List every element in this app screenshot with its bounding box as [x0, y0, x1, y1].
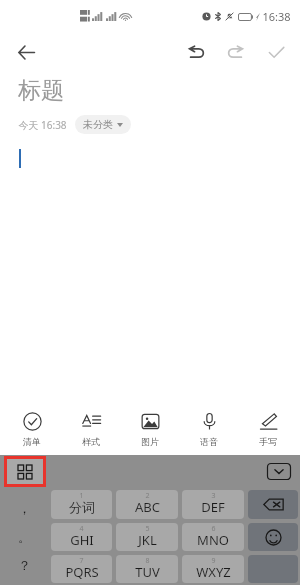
- button[interactable]: 手写: [241, 403, 295, 455]
- staticText: JKL: [138, 531, 157, 549]
- staticText: 3: [211, 491, 216, 501]
- staticText: 。: [18, 529, 31, 545]
- staticText: 7: [79, 556, 84, 566]
- staticText: ABC: [135, 498, 160, 516]
- staticText: 手写: [259, 436, 277, 447]
- button[interactable]: 未分类: [75, 115, 131, 134]
- staticText: 清单: [23, 436, 41, 447]
- staticText: 样式: [82, 436, 100, 447]
- staticText: WXYZ: [196, 563, 231, 581]
- staticText: 图片: [141, 436, 159, 447]
- button[interactable]: 6: [182, 523, 244, 551]
- staticText: 1: [79, 491, 84, 501]
- staticText: 9: [211, 556, 216, 566]
- staticText: 语音: [200, 436, 218, 447]
- staticText: MNO: [197, 531, 229, 549]
- button[interactable]: 语音: [182, 403, 236, 455]
- staticText: 5: [145, 524, 150, 534]
- button[interactable]: 8: [116, 555, 178, 583]
- staticText: PQRS: [65, 563, 99, 581]
- button[interactable]: 1: [51, 490, 112, 519]
- button[interactable]: Keyboard layout: [7, 459, 43, 484]
- button[interactable]: Redo: [216, 32, 256, 72]
- staticText: 8: [145, 556, 150, 566]
- button[interactable]: Back: [8, 34, 44, 70]
- button[interactable]: 7: [51, 555, 112, 583]
- staticText: 分词: [69, 499, 95, 515]
- staticText: ？: [18, 557, 31, 573]
- button[interactable]: 样式: [64, 403, 118, 455]
- button[interactable]: Backspace: [248, 490, 298, 519]
- staticText: 标题: [18, 76, 64, 105]
- staticText: 4: [79, 524, 84, 534]
- button[interactable]: 图片: [123, 403, 177, 455]
- button[interactable]: 2: [116, 490, 178, 519]
- button[interactable]: Done: [256, 32, 296, 72]
- staticText: GHI: [70, 531, 94, 549]
- button[interactable]: 清单: [5, 403, 59, 455]
- staticText: TUV: [135, 563, 160, 581]
- staticText: ，: [18, 500, 31, 516]
- staticText: DEF: [201, 498, 225, 516]
- staticText: 未分类: [83, 118, 113, 131]
- staticText: 6: [211, 524, 216, 534]
- button[interactable]: 9: [182, 555, 244, 583]
- staticText: 16:38: [262, 9, 291, 24]
- button[interactable]: Emoji: [248, 523, 298, 551]
- button[interactable]: 3: [182, 490, 244, 519]
- button[interactable]: 5: [116, 523, 178, 551]
- button[interactable]: 4: [51, 523, 112, 551]
- button[interactable]: Undo: [176, 32, 216, 72]
- button[interactable]: ，: [0, 488, 49, 585]
- staticText: 2: [145, 491, 150, 501]
- staticText: 今天 16:38: [18, 118, 67, 132]
- button[interactable]: Hide keyboard: [267, 463, 291, 480]
